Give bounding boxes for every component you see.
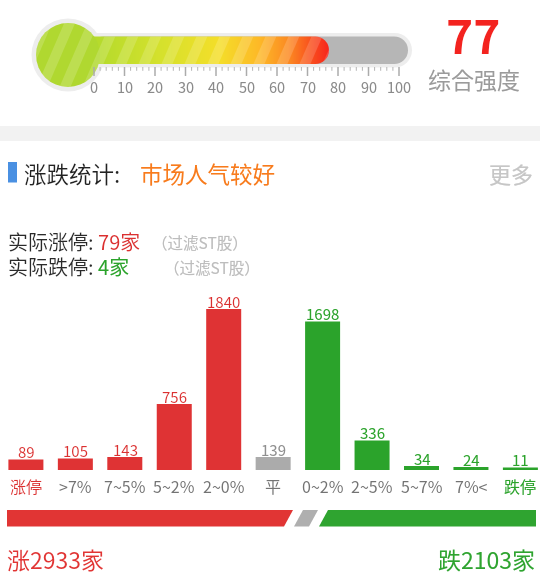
staticText: 涨跌统计: [24,157,121,190]
staticText: 100 [387,76,412,97]
staticText: 5~2% [153,474,195,497]
staticText: 实际跌停: 4家 [8,252,130,281]
staticText: 30 [178,76,195,97]
staticText: 11 [512,449,529,471]
staticText: 70 [300,76,317,97]
staticText: 756 [162,386,187,408]
staticText: 更多 [489,157,534,189]
staticText: 涨停 [10,474,43,497]
staticText: 2~5% [351,474,393,497]
staticText: （过滤ST股） [152,231,248,253]
staticText: 34 [414,448,431,470]
staticText: 平 [265,474,282,497]
staticText: 77 [446,1,501,68]
staticText: 90 [361,76,378,97]
staticText: 20 [147,76,164,97]
staticText: 涨2933家 [7,542,105,575]
staticText: 实际涨停: 79家 [8,227,141,256]
staticText: 7~5% [104,474,146,497]
button[interactable]: 更多 [374,157,534,189]
staticText: 7%< [455,474,488,497]
staticText: 1840 [207,291,241,313]
staticText: 60 [269,76,286,97]
staticText: 336 [360,422,385,444]
staticText: 0~2% [302,474,344,497]
staticText: 市场人气较好 [140,157,276,190]
staticText: >7% [59,474,92,497]
staticText: 139 [261,439,286,461]
staticText: 40 [208,76,225,97]
staticText: 1698 [306,303,340,325]
staticText: 50 [239,76,256,97]
staticText: 24 [463,449,480,471]
staticText: 5~7% [401,474,443,497]
staticText: 10 [117,76,134,97]
staticText: 80 [330,76,347,97]
staticText: 2~0% [203,474,245,497]
staticText: 跌2103家 [438,542,536,575]
staticText: 105 [63,440,88,462]
staticText: 综合强度 [428,62,520,95]
staticText: 143 [113,439,138,461]
staticText: 0 [90,76,99,97]
staticText: 89 [18,441,35,463]
staticText: 跌停 [504,474,537,497]
staticText: （过滤ST股） [164,256,260,278]
